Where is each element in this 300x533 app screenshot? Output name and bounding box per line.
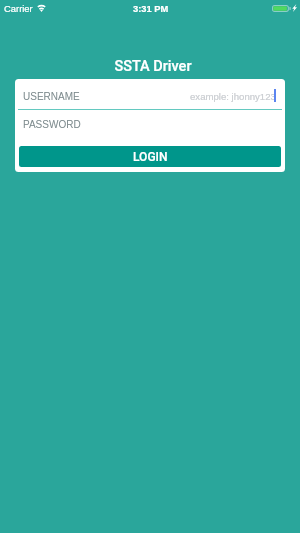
staticText: Carrier: [4, 3, 33, 14]
staticText: 3:31 PM: [133, 4, 169, 14]
other: Charging: [292, 4, 297, 12]
button[interactable]: LOGIN: [19, 146, 281, 167]
button[interactable]: USERNAME: [23, 85, 276, 107]
staticText: example: jhonny123: [190, 91, 276, 102]
staticText: PASSWORD: [23, 119, 81, 130]
staticText: SSTA Driver: [3, 58, 300, 75]
staticText: USERNAME: [23, 91, 80, 102]
other: Battery: [272, 5, 291, 12]
button[interactable]: PASSWORD: [23, 113, 285, 135]
other: Wi-Fi signal: [37, 5, 46, 12]
staticText: LOGIN: [133, 150, 168, 164]
